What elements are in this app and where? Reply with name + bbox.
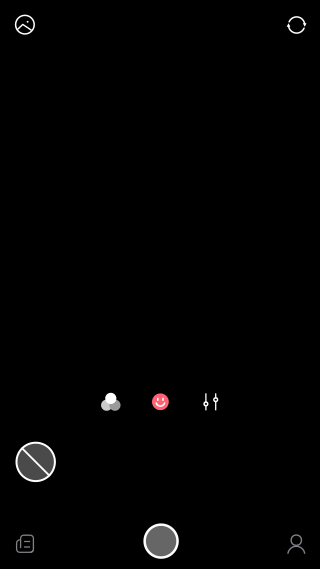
button[interactable]: Lenses	[144, 385, 177, 418]
button[interactable]: No filter	[12, 438, 60, 486]
button[interactable]: Chats	[12, 531, 38, 557]
button[interactable]: Adjust	[194, 385, 227, 418]
button[interactable]: Profile	[283, 530, 309, 556]
button[interactable]: Open gallery	[8, 8, 42, 42]
button[interactable]: Take photo	[140, 520, 182, 562]
button[interactable]: Flip camera	[280, 8, 314, 42]
button[interactable]: Filters	[94, 385, 127, 418]
